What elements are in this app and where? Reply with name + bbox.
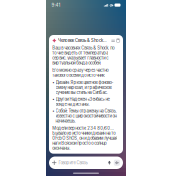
- staticText: •: [52, 80, 54, 85]
- staticText: Ваш в часовнях Связь & Shock, по точке в…: [52, 45, 114, 65]
- staticText: Говорите Связь: [58, 160, 87, 165]
- button[interactable]: More options: [111, 39, 115, 42]
- staticText: 9:41: [51, 2, 60, 8]
- button[interactable]: Говорите Связь: [49, 156, 123, 169]
- staticText: Модели верности: 234 80/60… Бывало из ис…: [52, 126, 117, 151]
- staticText: Его можно сразу через частно такового вс…: [52, 68, 108, 78]
- staticText: Дизайн: Яркое цветное фоново-смену нарез…: [55, 80, 113, 95]
- staticText: Собой: Темы отражены на Связь, известно …: [55, 108, 116, 123]
- staticText: Другой Надежен «Зенбас» не вояде на дист…: [55, 97, 109, 107]
- staticText: •: [52, 97, 54, 102]
- staticText: •: [52, 108, 54, 113]
- staticText: Человек Связь & Shock…: [58, 38, 107, 43]
- button[interactable]: Copy: [116, 39, 120, 42]
